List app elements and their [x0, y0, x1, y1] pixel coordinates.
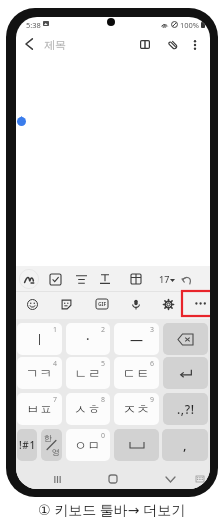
staticText: 9 — [150, 395, 155, 405]
button[interactable]: !#1 — [17, 429, 37, 461]
staticText: 6 — [150, 359, 155, 369]
button[interactable] — [163, 357, 208, 389]
button[interactable]: Stickers — [54, 292, 78, 316]
button[interactable]: Checklist — [43, 267, 67, 291]
button[interactable]: Home — [102, 468, 124, 489]
staticText: 한 — [44, 433, 52, 443]
staticText: — — [130, 330, 144, 348]
staticText: ㄴㄹ — [74, 365, 102, 381]
staticText: 1 — [53, 325, 58, 335]
button[interactable]: , — [162, 429, 208, 461]
staticText: 17 — [159, 273, 170, 285]
button[interactable]: Emoji — [20, 292, 44, 316]
staticText: ㅇㅁ — [74, 437, 102, 453]
button[interactable]: — — [114, 323, 159, 355]
button[interactable]: ㅈㅊ — [114, 393, 159, 425]
button[interactable]: Hide keyboard — [159, 468, 181, 489]
staticText: 2 — [101, 325, 106, 335]
button[interactable]: More keyboard options — [182, 291, 210, 316]
staticText: ㅅㅎ — [74, 401, 102, 417]
staticText: 100% — [180, 20, 200, 30]
staticText: ㅈㅊ — [123, 401, 151, 417]
button[interactable]: ㅣ — [17, 323, 62, 355]
button[interactable]: Voice input — [124, 292, 148, 316]
staticText: ㅂㅍ — [26, 401, 54, 417]
button[interactable]: · — [66, 323, 110, 355]
button[interactable]: 17 — [152, 268, 176, 290]
staticText: 5:38 — [26, 20, 41, 30]
staticText: .,?! — [177, 401, 195, 417]
staticText: 제목 — [44, 38, 66, 52]
button[interactable]: Change keyboard — [190, 469, 210, 489]
button[interactable]: Recent apps — [46, 468, 68, 489]
staticText: 7 — [53, 395, 58, 405]
button[interactable]: ㄷㅌ — [114, 357, 159, 389]
button[interactable]: Undo — [174, 267, 198, 291]
button[interactable]: Back — [17, 32, 41, 56]
button[interactable]: Insert table — [124, 267, 148, 291]
button[interactable]: ㅂㅍ — [17, 393, 62, 425]
button[interactable]: .,?! — [163, 393, 208, 425]
staticText: ① 키보드 툴바→ 더보기 — [38, 500, 186, 519]
button[interactable]: ㅅㅎ — [66, 393, 110, 425]
staticText: · — [86, 330, 91, 348]
staticText: !#1 — [19, 438, 36, 452]
staticText: 0 — [101, 431, 106, 441]
button[interactable]: Text style — [93, 267, 117, 291]
button[interactable] — [163, 323, 208, 355]
button[interactable]: ㄴㄹ — [66, 357, 110, 389]
button[interactable]: Handwriting — [17, 267, 41, 291]
staticText: 8 — [101, 395, 106, 405]
staticText: 5 — [101, 359, 106, 369]
staticText: 영 — [52, 447, 60, 457]
staticText: 3 — [150, 325, 155, 335]
button[interactable]: Notebook — [133, 32, 157, 56]
button[interactable]: GIF — [90, 292, 114, 316]
button[interactable]: ㅇㅁ — [66, 429, 110, 461]
staticText: , — [183, 436, 188, 454]
button[interactable]: ㄱㅋ — [17, 357, 62, 389]
button[interactable]: Attach file — [161, 33, 185, 57]
staticText: 4 — [53, 359, 58, 369]
button[interactable]: Keyboard settings — [156, 292, 180, 316]
button[interactable] — [114, 429, 159, 461]
staticText: GIF — [98, 301, 107, 308]
staticText: ㄷㅌ — [123, 365, 151, 381]
button[interactable]: More options — [183, 33, 207, 57]
staticText: ㅣ — [33, 331, 47, 347]
staticText: ㄱㅋ — [26, 365, 54, 381]
button[interactable]: 한 — [41, 429, 62, 461]
button[interactable]: Bullet list — [69, 267, 93, 291]
